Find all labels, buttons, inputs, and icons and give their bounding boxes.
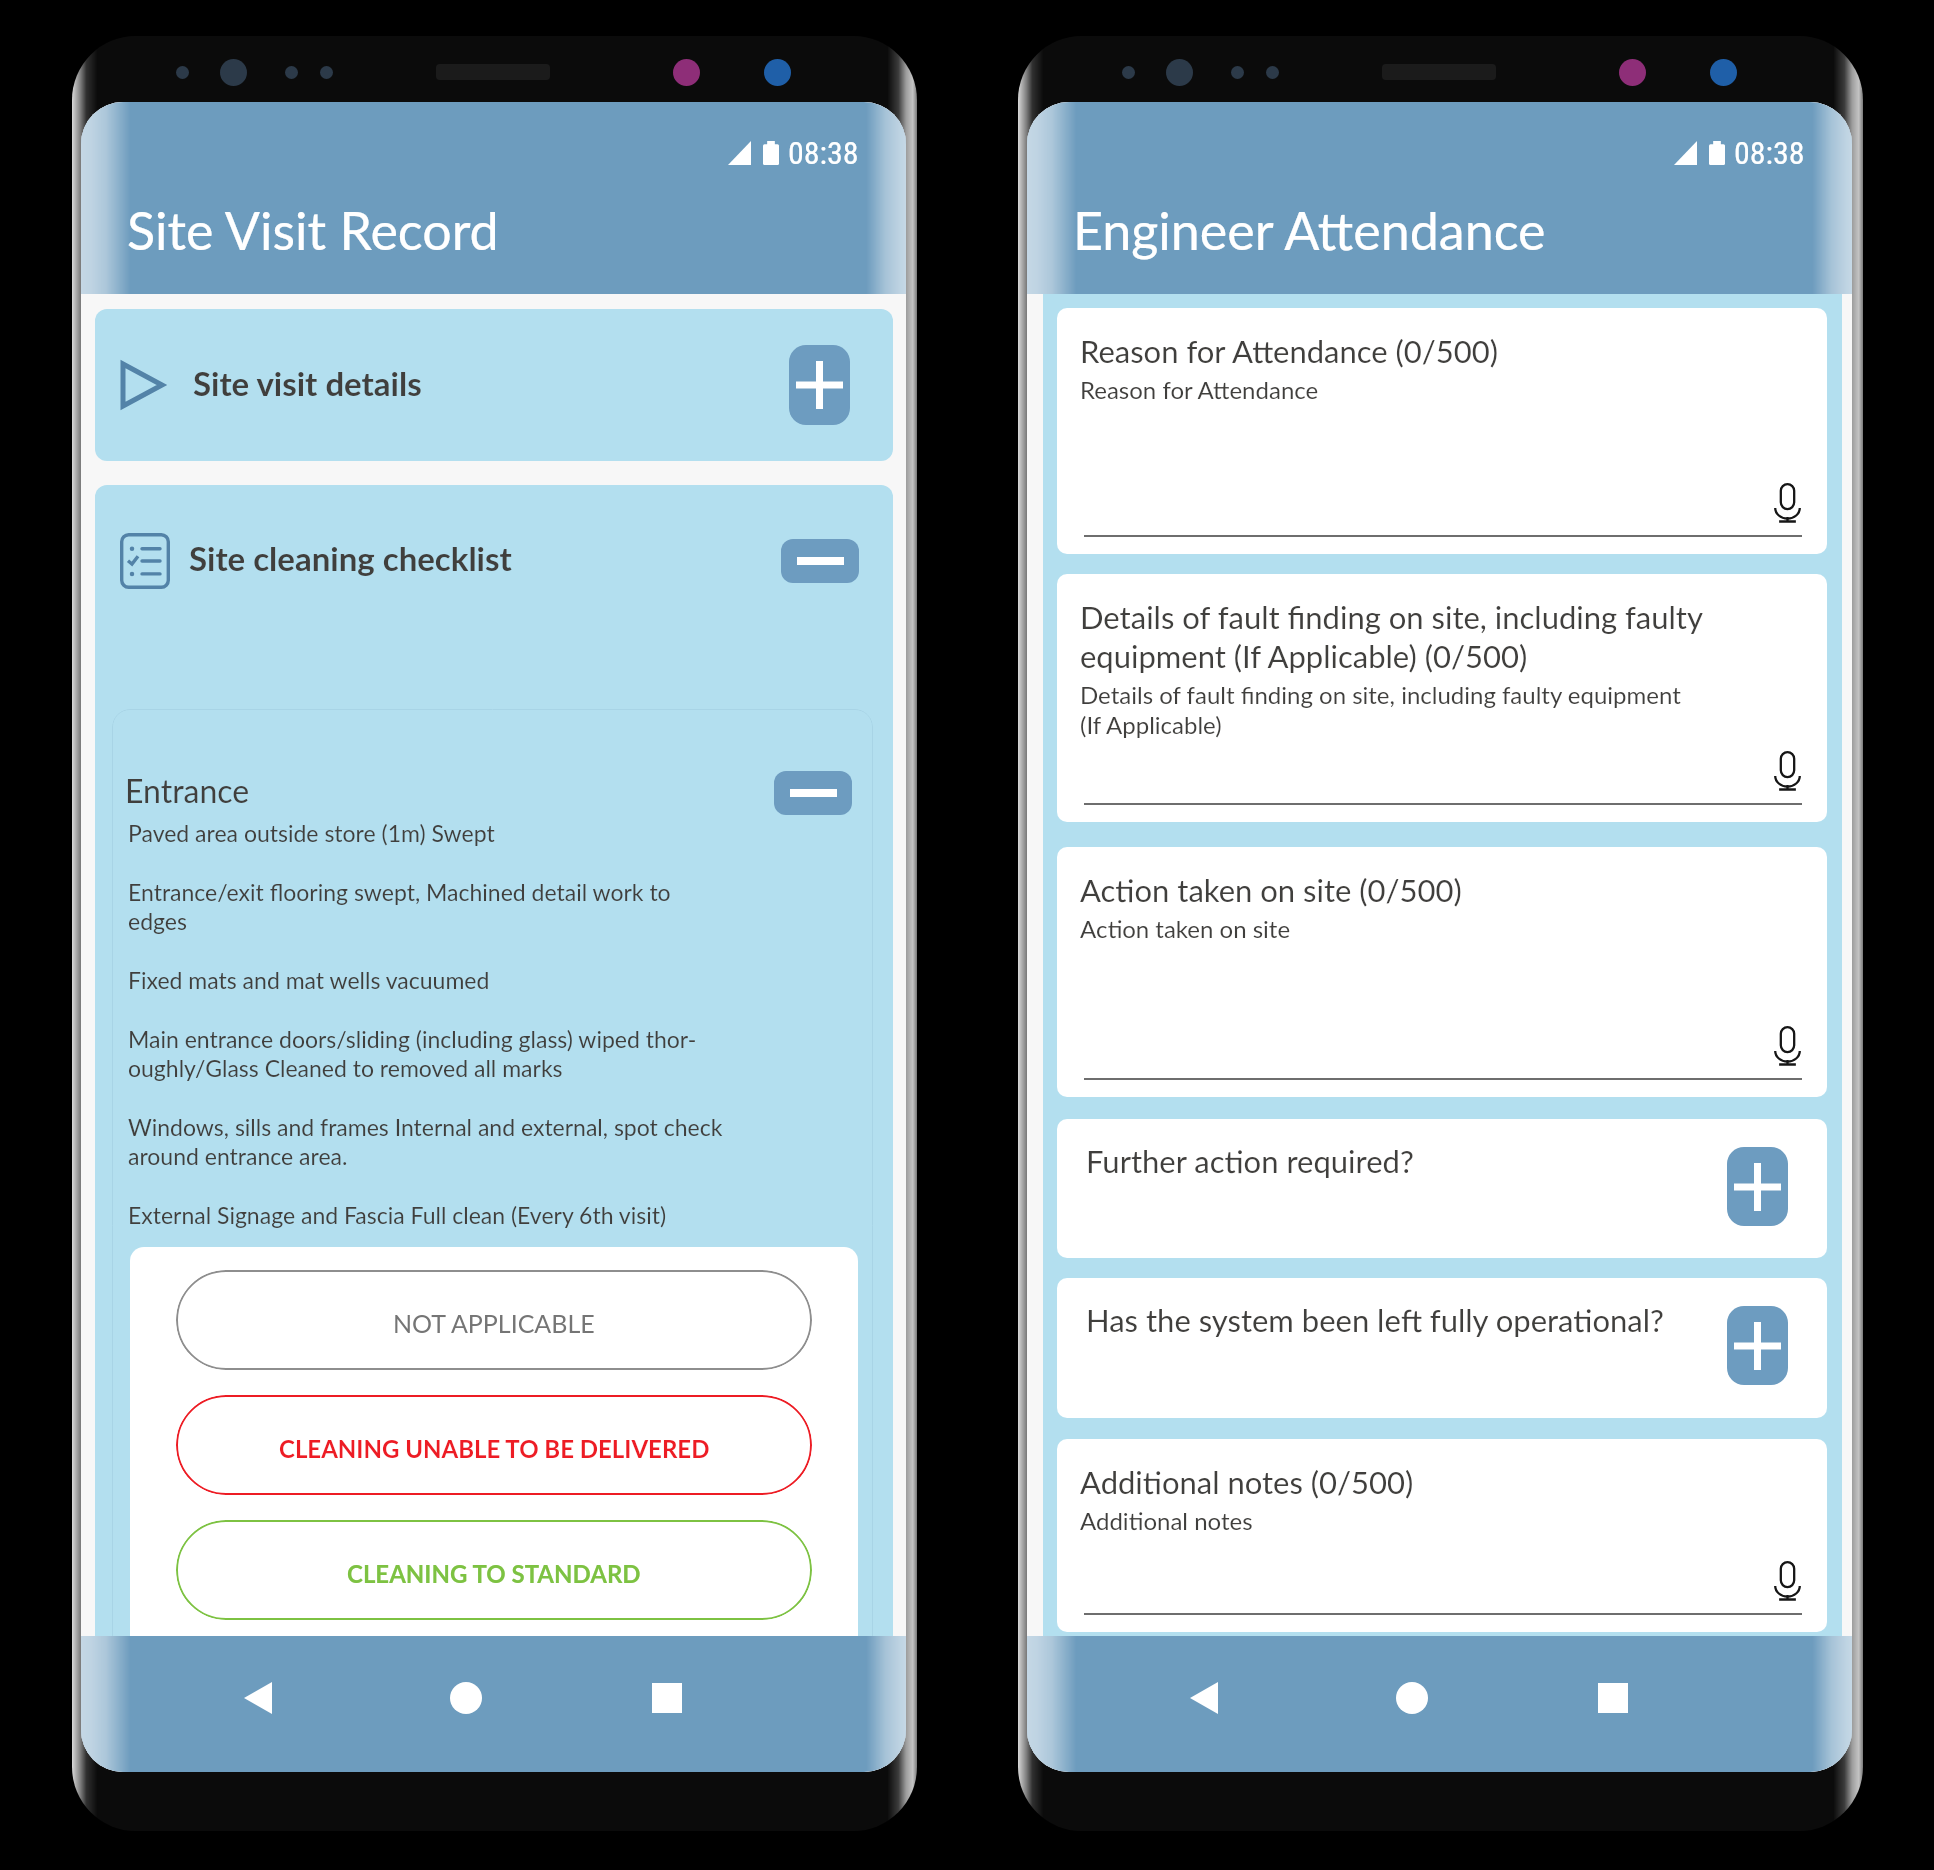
button[interactable]: Expand section [1727,1147,1788,1226]
button[interactable]: Collapse section [781,539,859,583]
staticText: Has the system been left fully operation… [1086,1301,1664,1338]
button[interactable]: Expand section [789,345,850,425]
staticText: Paved area outside store (1m) Swept [128,819,495,847]
staticText: Further action required? [1086,1142,1414,1179]
button[interactable]: Has the system been left fully operation… [1057,1278,1827,1418]
staticText: Entrance/exit flooring swept, Machined d… [128,878,671,935]
staticText: Details of fault finding on site, includ… [1080,598,1703,675]
staticText: CLEANING UNABLE TO BE DELIVERED [279,1434,710,1463]
button[interactable]: NOT APPLICABLE [176,1270,812,1370]
staticText: 08:38 [788,134,859,172]
staticText: Reason for Attendance [1080,375,1319,404]
staticText: Entrance [125,771,250,809]
staticText: Details of fault finding on site, includ… [1080,680,1681,739]
button[interactable] [112,709,873,843]
staticText: Additional notes [1080,1506,1253,1535]
button[interactable] [95,485,893,625]
staticText: Site cleaning checklist [189,538,512,578]
button[interactable]: Details of fault finding on site, includ… [1057,574,1827,822]
button[interactable]: Recent apps [1558,1630,1668,1766]
button[interactable]: CLEANING TO STANDARD [176,1520,812,1620]
staticText: Windows, sills and frames Internal and e… [128,1113,723,1170]
staticText: Site visit details [193,363,422,403]
staticText: 08:38 [1734,134,1805,172]
button[interactable]: Site visit details [95,309,893,461]
button[interactable]: Expand section [1727,1306,1788,1385]
button[interactable]: Back [203,1630,313,1766]
button[interactable]: Collapse section [774,771,852,815]
button[interactable]: Back [1149,1630,1259,1766]
button[interactable]: CLEANING UNABLE TO BE DELIVERED [176,1395,812,1495]
staticText: Action taken on site [1080,914,1291,943]
staticText: NOT APPLICABLE [393,1308,595,1338]
staticText: Engineer Attendance [1073,199,1546,261]
button[interactable]: Home [1357,1630,1467,1766]
button[interactable]: Home [411,1630,521,1766]
button[interactable]: Reason for Attendance (0/500) [1057,308,1827,554]
button[interactable]: Action taken on site (0/500) [1057,847,1827,1097]
staticText: External Signage and Fascia Full clean (… [128,1201,667,1229]
staticText: Fixed mats and mat wells vacuumed [128,966,490,994]
staticText: Additional notes (0/500) [1080,1463,1414,1500]
staticText: Action taken on site (0/500) [1080,871,1462,908]
button[interactable]: Recent apps [612,1630,722,1766]
staticText: Main entrance doors/sliding (including g… [128,1025,697,1082]
staticText: CLEANING TO STANDARD [347,1559,641,1588]
button[interactable]: Further action required? [1057,1119,1827,1258]
button[interactable]: Additional notes (0/500) [1057,1439,1827,1632]
staticText: Site Visit Record [127,199,499,261]
staticText: Reason for Attendance (0/500) [1080,332,1499,369]
